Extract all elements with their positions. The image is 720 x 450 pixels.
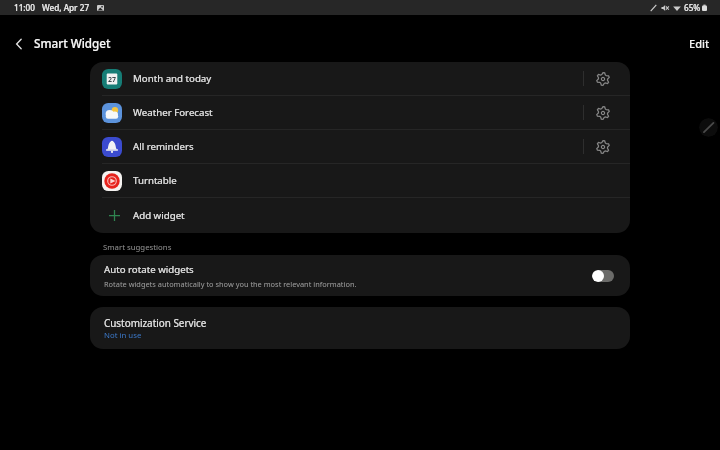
staticText: Weather Forecast (133, 106, 213, 119)
button[interactable]: Customization Service (90, 307, 630, 349)
button[interactable]: 27 (90, 62, 630, 95)
staticText: Not in use (104, 330, 142, 341)
staticText: 11:00 (14, 2, 35, 13)
staticText: Customization Service (104, 316, 207, 329)
staticText: Smart Widget (34, 35, 111, 51)
staticText: Month and today (133, 72, 212, 85)
staticText: Edit (689, 36, 710, 51)
staticText: Turntable (133, 174, 177, 187)
button[interactable]: Add widget (90, 198, 630, 232)
button[interactable]: Turntable (90, 164, 630, 197)
staticText: Add widget (133, 209, 185, 222)
button[interactable]: Settings (593, 103, 613, 123)
staticText: 27 (108, 75, 117, 85)
button[interactable]: Settings (593, 137, 613, 157)
button[interactable]: Back (7, 32, 31, 56)
button[interactable]: Weather Forecast (90, 96, 630, 129)
staticText: All reminders (133, 140, 194, 153)
staticText: 65% (684, 2, 701, 13)
button[interactable]: Edit (689, 36, 710, 51)
button[interactable]: S Pen (699, 118, 718, 137)
button[interactable]: Auto rotate widgets toggle (592, 270, 614, 282)
staticText: Rotate widgets automatically to show you… (104, 279, 357, 289)
staticText: Auto rotate widgets (104, 263, 194, 276)
button[interactable]: Settings (593, 69, 613, 89)
staticText: Wed, Apr 27 (42, 2, 90, 13)
staticText: Smart suggestions (103, 242, 172, 253)
button[interactable]: Auto rotate widgets (90, 255, 630, 296)
button[interactable]: All reminders (90, 130, 630, 163)
